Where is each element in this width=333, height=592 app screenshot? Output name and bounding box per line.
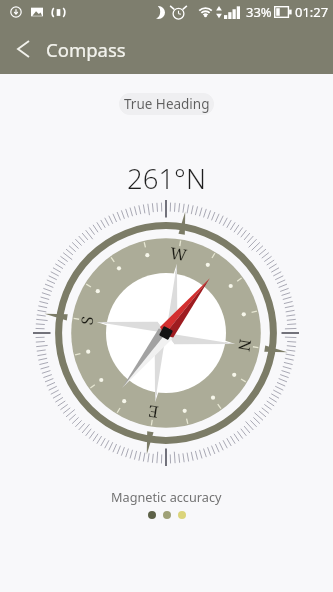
staticText: Compass <box>46 37 126 62</box>
staticText: 261°N <box>127 160 206 197</box>
staticText: 33% <box>246 3 272 21</box>
staticText: Magnetic accuracy <box>111 488 222 505</box>
button[interactable]: Back <box>0 24 46 74</box>
button[interactable]: True Heading <box>119 93 214 115</box>
staticText: 01:27 <box>295 3 329 21</box>
staticText: True Heading <box>124 95 210 113</box>
